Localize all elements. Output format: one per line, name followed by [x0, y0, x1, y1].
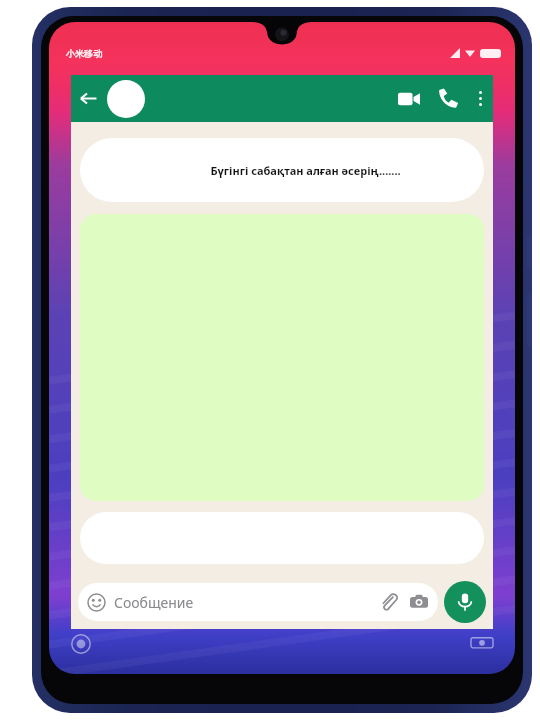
button[interactable]: More options — [467, 75, 493, 122]
button[interactable]: Home — [71, 634, 91, 654]
button[interactable]: Record voice message — [444, 581, 486, 623]
button[interactable]: Attach — [376, 589, 402, 615]
button[interactable]: Бүгінгі сабақтан алған әсерің....... — [80, 138, 484, 202]
button[interactable]: Video call — [389, 75, 429, 122]
button[interactable]: Сообщение — [78, 583, 438, 621]
button[interactable]: Voice call — [429, 75, 467, 122]
staticText: Сообщение — [114, 593, 194, 612]
staticText: Бүгінгі сабақтан алған әсерің....... — [210, 163, 401, 178]
button[interactable] — [80, 512, 484, 564]
button[interactable]: Contact avatar — [107, 80, 145, 118]
button[interactable]: Screenshot — [471, 632, 493, 654]
button[interactable]: Camera — [406, 589, 432, 615]
staticText: 小米移动 — [66, 48, 102, 59]
button[interactable]: Back — [71, 75, 105, 122]
